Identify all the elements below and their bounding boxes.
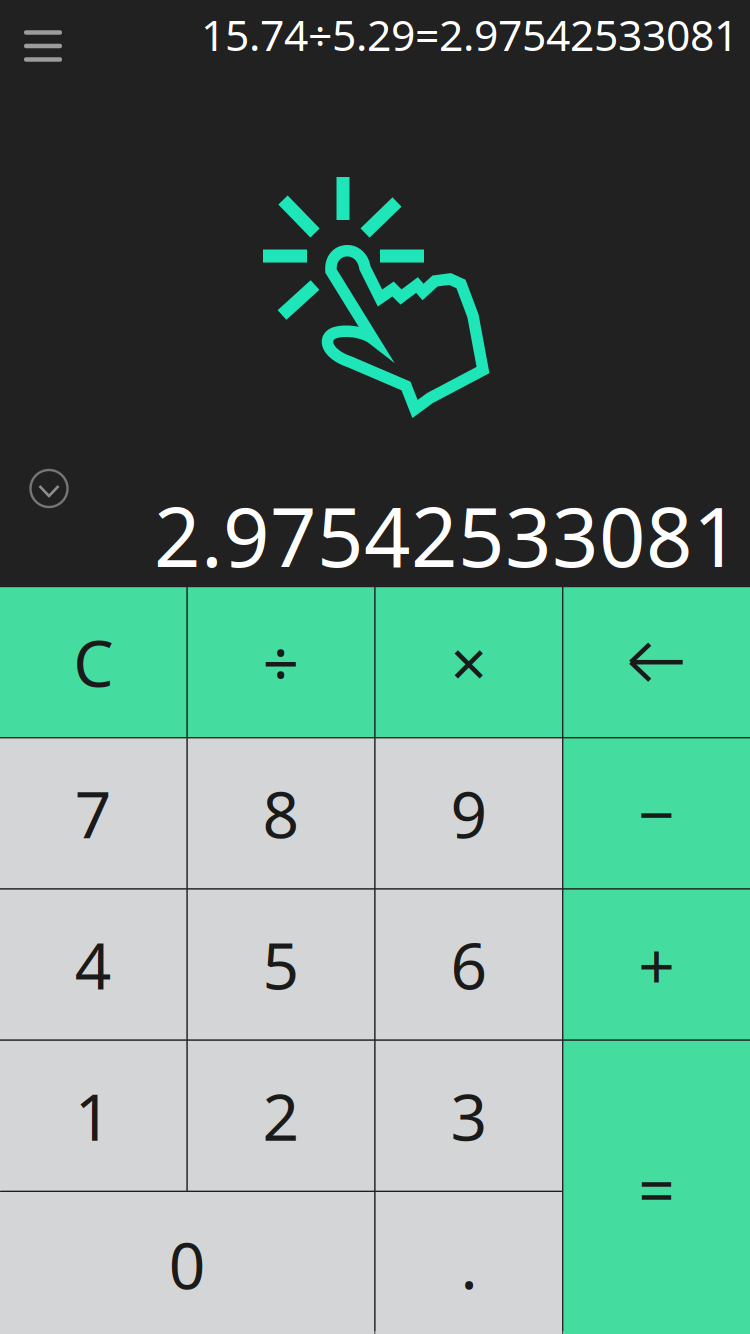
button[interactable]: 8 xyxy=(188,738,374,888)
staticText: . xyxy=(460,1222,477,1307)
button[interactable]: 0 xyxy=(0,1192,374,1334)
staticText: 5 xyxy=(263,922,300,1007)
staticText: = xyxy=(638,1146,675,1231)
button[interactable]: 6 xyxy=(376,890,562,1040)
button[interactable]: . xyxy=(376,1192,562,1334)
staticText: 7 xyxy=(75,771,112,856)
button[interactable]: 4 xyxy=(0,890,187,1040)
staticText: 0 xyxy=(169,1222,206,1307)
button[interactable]: × xyxy=(376,587,562,737)
staticText: 6 xyxy=(450,922,487,1007)
staticText: 4 xyxy=(75,922,112,1007)
staticText: 9 xyxy=(450,771,487,856)
staticText: 2 xyxy=(263,1073,300,1158)
button[interactable]: 5 xyxy=(188,890,374,1040)
button[interactable]: 9 xyxy=(376,738,562,888)
staticText: 15.74÷5.29=2.97542533081 xyxy=(201,6,738,63)
button[interactable]: Menu xyxy=(0,0,86,78)
button[interactable]: Show history xyxy=(0,463,98,513)
button[interactable]: C xyxy=(0,587,187,737)
staticText: − xyxy=(638,771,675,856)
button[interactable]: 1 xyxy=(0,1041,187,1191)
staticText: C xyxy=(73,620,113,705)
button[interactable]: 7 xyxy=(0,738,187,888)
staticText: 2.97542533081 xyxy=(154,481,740,589)
staticText: 1 xyxy=(75,1073,112,1158)
staticText: × xyxy=(450,620,487,705)
button[interactable]: 2 xyxy=(188,1041,374,1191)
button[interactable]: + xyxy=(563,890,750,1040)
button[interactable]: 3 xyxy=(376,1041,562,1191)
staticText: 8 xyxy=(263,771,300,856)
button[interactable]: Backspace xyxy=(563,587,750,737)
button[interactable]: − xyxy=(563,738,750,888)
staticText: 3 xyxy=(450,1073,487,1158)
button[interactable]: ÷ xyxy=(188,587,374,737)
staticText: ÷ xyxy=(263,620,300,705)
button[interactable]: = xyxy=(563,1041,750,1334)
staticText: + xyxy=(638,922,675,1007)
